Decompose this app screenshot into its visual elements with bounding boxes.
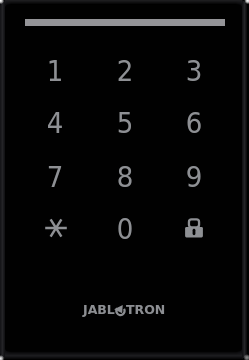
button[interactable]: 1 [29, 45, 81, 97]
button[interactable]: 2 [99, 45, 151, 97]
button[interactable]: 4 [29, 97, 81, 149]
staticText: 5 [117, 107, 133, 140]
button[interactable]: 3 [168, 45, 220, 97]
staticText: 0 [117, 213, 133, 246]
button[interactable]: Star [30, 202, 82, 254]
staticText: JABL [83, 302, 115, 317]
staticText: TRON [126, 302, 166, 317]
button[interactable]: Lock [168, 202, 220, 254]
staticText: 3 [186, 55, 202, 88]
button[interactable]: 9 [168, 151, 220, 203]
staticText: 1 [47, 55, 63, 88]
button[interactable]: 6 [168, 97, 220, 149]
button[interactable]: 8 [99, 151, 151, 203]
staticText: 8 [117, 161, 133, 194]
button[interactable]: 5 [99, 97, 151, 149]
staticText: 6 [186, 107, 202, 140]
staticText: 9 [186, 161, 202, 194]
staticText: 2 [117, 55, 133, 88]
staticText: 7 [47, 161, 63, 194]
staticText: 4 [47, 107, 63, 140]
button[interactable]: 0 [99, 203, 151, 255]
button[interactable]: 7 [29, 151, 81, 203]
